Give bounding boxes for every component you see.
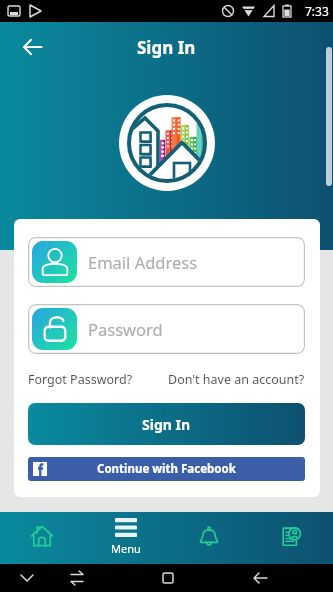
button[interactable]: Profile bbox=[250, 512, 333, 564]
button[interactable]: Menu bbox=[84, 512, 167, 564]
staticText: Sign In bbox=[137, 36, 196, 59]
button[interactable]: Forgot Password? bbox=[28, 371, 133, 388]
staticText: Email Address bbox=[88, 251, 198, 273]
button[interactable]: Password bbox=[28, 304, 305, 354]
button[interactable]: Don't have an account? bbox=[168, 371, 305, 388]
button[interactable]: Continue with Facebook bbox=[28, 457, 305, 481]
staticText: Sign In bbox=[142, 415, 191, 434]
staticText: 7:33 bbox=[305, 3, 329, 19]
button[interactable]: Home bbox=[0, 512, 84, 564]
button[interactable]: Email Address bbox=[28, 237, 305, 287]
button[interactable]: Notifications bbox=[167, 512, 250, 564]
staticText: Continue with Facebook bbox=[97, 461, 236, 477]
staticText: Password bbox=[88, 318, 163, 340]
button[interactable]: Back bbox=[16, 31, 48, 63]
staticText: Menu bbox=[111, 541, 141, 556]
button[interactable]: Sign In bbox=[28, 403, 305, 445]
